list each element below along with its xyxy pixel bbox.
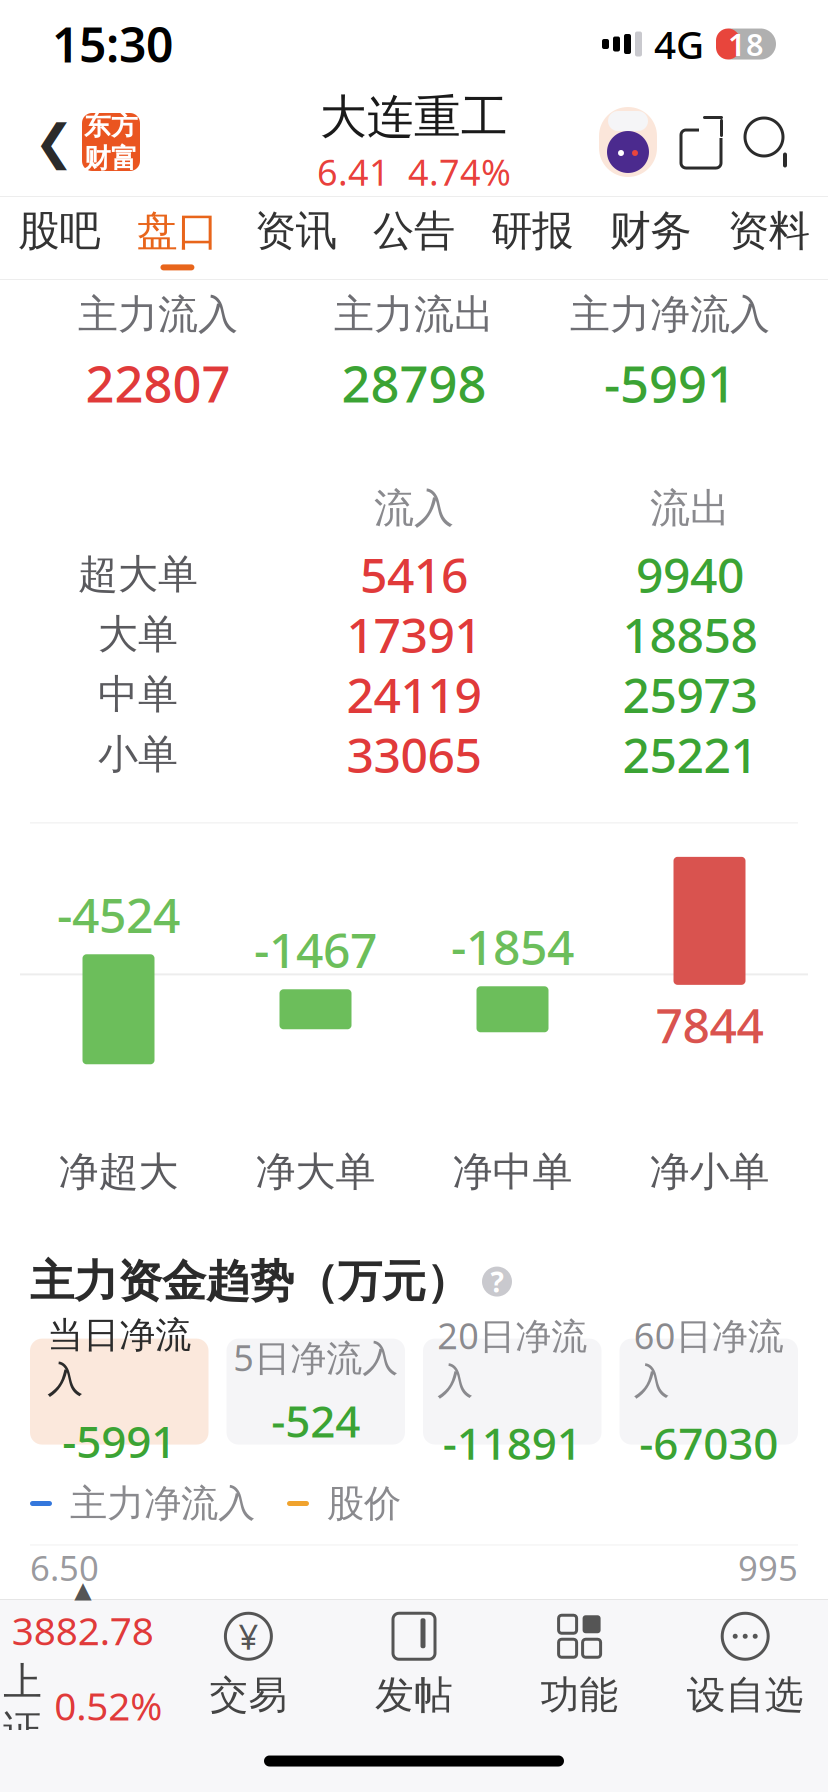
staticText: ❮	[34, 115, 74, 169]
button[interactable]: 盘口	[118, 197, 237, 279]
staticText: 净大单	[255, 1147, 375, 1196]
staticText: 15:30	[52, 12, 173, 76]
button[interactable]: 设自选	[662, 1600, 828, 1730]
staticText: -751	[727, 1611, 798, 1657]
staticText: 主力净流入	[70, 1481, 255, 1526]
staticText: 主力净流入	[570, 290, 770, 339]
staticText: -5991	[604, 349, 736, 416]
staticText: 流入	[374, 484, 454, 533]
button[interactable]: 当日净流入	[30, 1339, 208, 1445]
staticText: ?	[490, 1263, 503, 1300]
staticText: 股吧	[18, 206, 100, 256]
staticText: 中单	[98, 670, 178, 719]
staticText: 3882.78	[12, 1605, 154, 1656]
staticText: 财富	[84, 142, 138, 175]
button[interactable]: 智能助手	[590, 102, 666, 182]
staticText: 净超大	[58, 1147, 178, 1196]
button[interactable]: 研报	[473, 197, 591, 279]
staticText: 主力资金趋势（万元）	[30, 1254, 470, 1308]
staticText: 0.52%	[54, 1680, 162, 1731]
staticText: 24119	[346, 662, 481, 726]
staticText: 主力流入	[78, 290, 238, 339]
button[interactable]: 发帖	[331, 1600, 497, 1730]
staticText: 大单	[98, 610, 178, 659]
staticText: 5416	[360, 542, 468, 606]
button[interactable]: ▲	[0, 1600, 166, 1730]
staticText: -4524	[57, 882, 180, 946]
staticText: 6.41 4.74%	[317, 148, 511, 196]
staticText: 17391	[346, 602, 481, 666]
staticText: -5991	[62, 1412, 176, 1470]
staticText: 资料	[728, 206, 810, 256]
staticText: 交易	[209, 1671, 287, 1719]
staticText: 18858	[622, 602, 757, 666]
staticText: 流出	[650, 484, 730, 533]
button[interactable]: 股吧	[0, 197, 118, 279]
staticText: 盘口	[136, 206, 218, 256]
button[interactable]: 公告	[355, 197, 473, 279]
button[interactable]: 资讯	[237, 197, 355, 279]
staticText: 20日净流入	[437, 1311, 587, 1403]
button[interactable]: 东方财富首页	[82, 113, 140, 171]
staticText: 大连重工	[320, 88, 508, 146]
button[interactable]: 分享	[666, 102, 736, 182]
staticText: 25221	[622, 722, 757, 786]
staticText: 6.41	[30, 1611, 99, 1657]
staticText: 9940	[636, 542, 744, 606]
staticText: 超大单	[78, 550, 198, 599]
staticText: 5日净流入	[233, 1333, 398, 1381]
staticText: -524	[271, 1391, 360, 1450]
staticText: ▲	[74, 1577, 91, 1603]
staticText: 7844	[655, 993, 763, 1056]
button[interactable]: 返回	[26, 102, 82, 182]
staticText: 设自选	[687, 1671, 804, 1719]
button[interactable]: 说明	[482, 1263, 512, 1300]
button[interactable]: 20日净流入	[423, 1339, 601, 1445]
staticText: 4G	[654, 18, 704, 70]
staticText: 小单	[98, 730, 178, 779]
staticText: 上证	[3, 1658, 42, 1753]
staticText: 净小单	[649, 1147, 769, 1196]
staticText: 6.50	[30, 1544, 99, 1590]
button[interactable]: 财务	[591, 197, 710, 279]
staticText: 主力流出	[334, 290, 494, 339]
button[interactable]: 搜索	[736, 102, 802, 182]
staticText: 995	[738, 1544, 798, 1590]
button[interactable]: 60日净流入	[619, 1339, 798, 1445]
staticText: -11891	[443, 1413, 582, 1472]
staticText: 33065	[346, 722, 481, 786]
staticText: -67030	[639, 1413, 778, 1472]
staticText: 22807	[85, 349, 230, 416]
staticText: -1467	[254, 917, 377, 981]
staticText: -2498	[707, 1678, 798, 1724]
staticText: 净中单	[452, 1147, 572, 1196]
button[interactable]: 5日净流入	[226, 1339, 405, 1445]
staticText: 东方	[84, 109, 138, 142]
staticText: 研报	[491, 206, 573, 256]
button[interactable]: 资料	[710, 197, 828, 279]
staticText: 资讯	[255, 206, 337, 256]
button[interactable]: 功能	[497, 1600, 662, 1730]
staticText: 18	[728, 24, 764, 64]
staticText: 公告	[373, 206, 455, 256]
button[interactable]: ¥	[166, 1600, 331, 1730]
staticText: 发帖	[375, 1671, 453, 1719]
staticText: 财务	[610, 206, 692, 256]
staticText: 25973	[622, 662, 757, 726]
staticText: 股价	[327, 1481, 401, 1526]
staticText: ¥	[238, 1613, 258, 1659]
staticText: 6.31	[30, 1678, 99, 1724]
staticText: -1854	[451, 914, 574, 978]
staticText: 当日净流入	[47, 1313, 191, 1402]
staticText: 28798	[341, 349, 486, 416]
staticText: 60日净流入	[634, 1311, 784, 1403]
staticText: 功能	[541, 1671, 619, 1719]
